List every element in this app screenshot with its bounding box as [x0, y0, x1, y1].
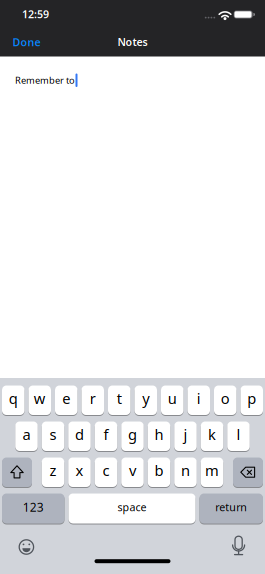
staticText: h	[154, 425, 163, 444]
staticText: p	[247, 389, 256, 408]
staticText: b	[154, 461, 163, 480]
staticText: Done	[12, 35, 40, 49]
staticText: e	[62, 389, 70, 408]
button[interactable]: r	[0, 0, 265, 574]
button[interactable]: t	[0, 0, 265, 574]
staticText: k	[208, 425, 216, 444]
button[interactable]: space	[0, 0, 265, 574]
staticText: d	[75, 425, 84, 444]
staticText: space	[117, 500, 146, 514]
button[interactable]: return	[0, 0, 265, 574]
staticText: y	[142, 389, 149, 408]
staticText: Notes	[117, 35, 147, 49]
staticText: u	[168, 389, 177, 408]
staticText: f	[103, 425, 108, 444]
button[interactable]: a	[0, 0, 265, 574]
button[interactable]: d	[0, 0, 265, 574]
button[interactable]: w	[0, 0, 265, 574]
staticText: return	[215, 500, 247, 514]
button[interactable]: l	[0, 0, 265, 574]
staticText: r	[90, 389, 96, 408]
button[interactable]: p	[0, 0, 265, 574]
button[interactable]: Emoji	[0, 0, 265, 574]
staticText: 12:59	[22, 7, 49, 21]
staticText: q	[9, 389, 18, 408]
button[interactable]: u	[0, 0, 265, 574]
staticText: o	[221, 389, 230, 408]
staticText: x	[75, 461, 83, 480]
button[interactable]: o	[0, 0, 265, 574]
staticText: a	[22, 425, 30, 444]
button[interactable]: v	[0, 0, 265, 574]
staticText: i	[197, 389, 201, 408]
button[interactable]: Dictate	[0, 0, 265, 574]
button[interactable]: y	[0, 0, 265, 574]
staticText: z	[49, 461, 56, 480]
button[interactable]: h	[0, 0, 265, 574]
staticText: n	[181, 461, 190, 480]
button[interactable]: f	[0, 0, 265, 574]
staticText: t	[117, 389, 122, 408]
button[interactable]: m	[0, 0, 265, 574]
button[interactable]: n	[0, 0, 265, 574]
button[interactable]: Shift	[0, 0, 265, 574]
staticText: c	[102, 461, 109, 480]
button[interactable]: 123	[0, 0, 265, 574]
button[interactable]: q	[0, 0, 265, 574]
staticText: s	[49, 425, 56, 444]
button[interactable]: k	[0, 0, 265, 574]
button[interactable]: z	[0, 0, 265, 574]
button[interactable]: g	[0, 0, 265, 574]
button[interactable]: Delete	[0, 0, 265, 574]
staticText: v	[129, 461, 136, 480]
button[interactable]: e	[0, 0, 265, 574]
staticText: j	[183, 425, 187, 444]
button[interactable]: c	[0, 0, 265, 574]
button[interactable]: s	[0, 0, 265, 574]
button[interactable]: b	[0, 0, 265, 574]
button[interactable]: Done	[12, 35, 40, 49]
staticText: l	[236, 425, 240, 444]
staticText: Remember to	[15, 74, 75, 86]
staticText: w	[34, 389, 46, 408]
button[interactable]: i	[0, 0, 265, 574]
staticText: 123	[23, 499, 44, 515]
button[interactable]: x	[0, 0, 265, 574]
staticText: m	[205, 461, 219, 480]
button[interactable]: j	[0, 0, 265, 574]
staticText: g	[128, 425, 137, 444]
